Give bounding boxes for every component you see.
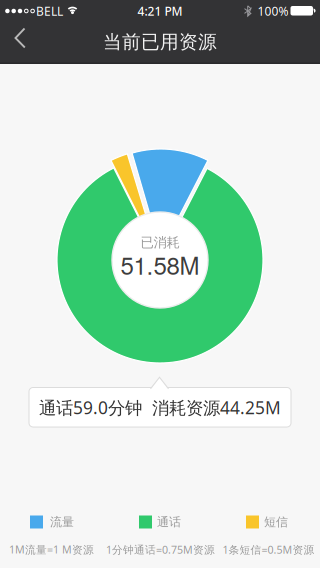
staticText: 已消耗 (140, 234, 179, 251)
staticText: BELL (36, 3, 63, 19)
staticText: 通话 (157, 515, 181, 529)
staticText: 100% (257, 3, 288, 19)
staticText: 当前已用资源 (103, 30, 217, 53)
staticText: 4:21 PM (137, 3, 182, 19)
staticText: 1条短信=0.5M资源 (222, 542, 314, 557)
staticText: 51.58M (120, 247, 199, 282)
staticText: 短信 (264, 515, 288, 529)
staticText: 通话59.0分钟 消耗资源44.25M (39, 396, 281, 419)
staticText: 1分钟通话=0.75M资源 (106, 542, 215, 557)
button[interactable]: Back (0, 22, 44, 62)
staticText: 流量 (50, 515, 74, 529)
staticText: 1M流量=1 M资源 (9, 542, 94, 557)
